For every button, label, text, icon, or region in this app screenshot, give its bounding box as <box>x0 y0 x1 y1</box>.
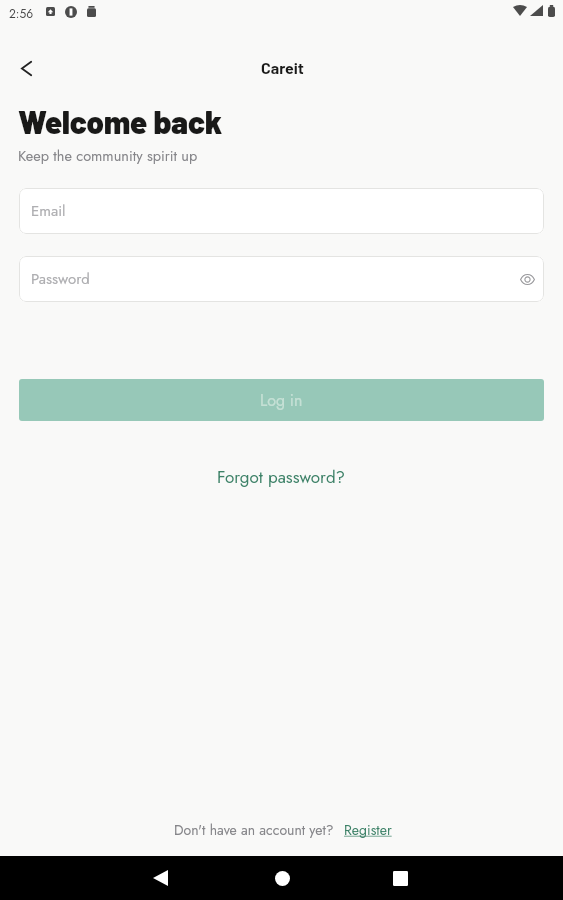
staticText: Log in <box>260 389 303 412</box>
staticText: Keep the community spirit up <box>18 145 198 166</box>
staticText: Register <box>344 820 392 840</box>
button[interactable]: Show password <box>513 265 541 293</box>
button[interactable]: Back <box>138 856 182 900</box>
button[interactable]: Back <box>6 48 46 88</box>
staticText: Careit <box>261 58 304 77</box>
staticText: Don't have an account yet? <box>174 820 334 840</box>
staticText: Welcome back <box>18 103 223 140</box>
staticText: Email <box>31 200 66 222</box>
button[interactable]: Home <box>260 856 304 900</box>
button[interactable]: Forgot password? <box>205 460 358 495</box>
button[interactable]: Recent apps <box>378 856 422 900</box>
button[interactable]: Log in <box>19 379 544 421</box>
button[interactable]: Email <box>19 188 544 234</box>
staticText: Password <box>31 268 90 290</box>
staticText: Forgot password? <box>217 465 346 490</box>
staticText: 2:56 <box>9 5 34 22</box>
button[interactable]: Register <box>344 820 392 840</box>
button[interactable]: Password <box>19 256 544 302</box>
